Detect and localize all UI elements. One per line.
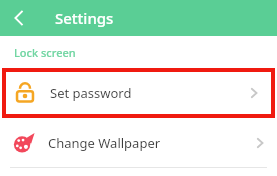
staticText: Lock screen [14, 45, 76, 60]
button[interactable]: Back [4, 3, 34, 33]
staticText: Settings [55, 8, 114, 28]
staticText: Set password [50, 84, 132, 102]
staticText: Change Wallpaper [48, 134, 161, 152]
button[interactable]: Set password [6, 72, 271, 114]
button[interactable]: Change Wallpaper [0, 118, 277, 167]
